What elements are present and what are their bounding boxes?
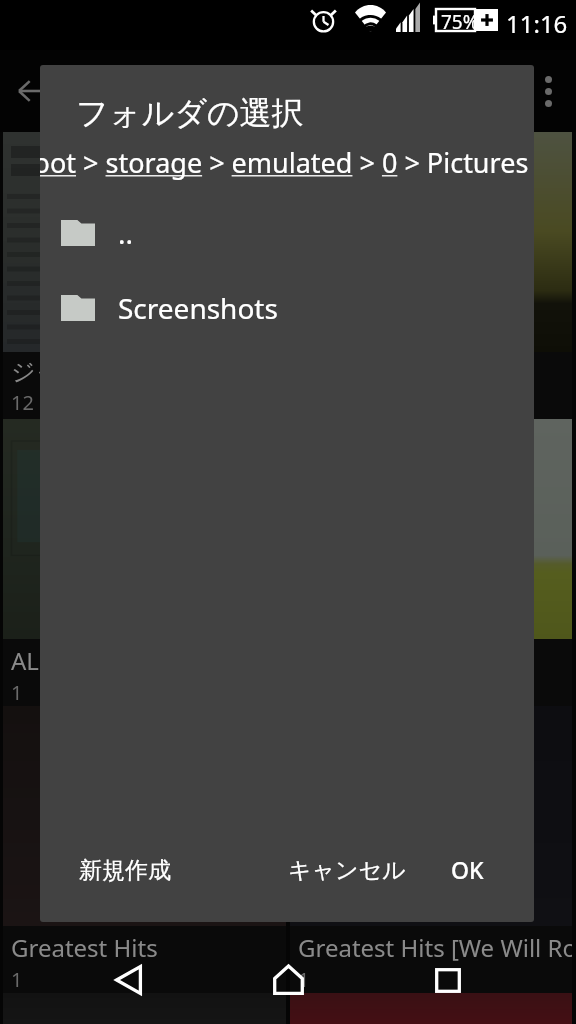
button[interactable]: More options <box>520 50 576 132</box>
button[interactable]: .. <box>40 195 534 270</box>
button[interactable]: Eagles <box>3 993 286 1024</box>
staticText: OK <box>451 854 484 885</box>
button[interactable]: root > storage > emulated > 0 > Pictures <box>40 144 534 180</box>
staticText: フォルダの選択 <box>76 93 304 133</box>
staticText: 75% <box>441 9 479 35</box>
staticText: 11:16 <box>506 7 568 40</box>
button[interactable]: キャンセル <box>268 840 426 922</box>
button[interactable]: 新規作成 <box>59 840 191 922</box>
button[interactable]: ジャパニーズポップス <box>3 132 286 419</box>
staticText: .. <box>118 214 134 252</box>
button[interactable]: Greatest Hits [We Will Ro <box>290 706 572 993</box>
button[interactable]: Album <box>290 993 572 1024</box>
staticText: 12 <box>11 389 34 416</box>
staticText: ジャパニーズポップス <box>11 357 257 387</box>
button[interactable]: Album <box>290 132 572 419</box>
button[interactable]: ALBUM <box>3 419 286 706</box>
staticText: 1 <box>11 966 23 993</box>
staticText: Greatest Hits <box>11 931 158 964</box>
button[interactable]: Navigate up <box>0 50 62 132</box>
button[interactable]: Greatest Hits <box>3 706 286 993</box>
button[interactable]: OK <box>431 838 504 922</box>
button[interactable]: Home <box>192 934 384 1024</box>
staticText: Screenshots <box>118 289 278 327</box>
staticText: ALBUM <box>11 644 94 677</box>
staticText: Greatest Hits [We Will Ro <box>298 931 572 964</box>
staticText: 1 <box>11 679 23 706</box>
button[interactable]: Screenshots <box>40 270 534 345</box>
staticText: キャンセル <box>288 856 406 885</box>
button[interactable]: Recents <box>384 934 576 1024</box>
staticText: 1 <box>298 966 310 993</box>
button[interactable]: XIR <box>290 419 572 706</box>
staticText: 新規作成 <box>79 856 171 885</box>
button[interactable]: Back <box>0 934 192 1024</box>
